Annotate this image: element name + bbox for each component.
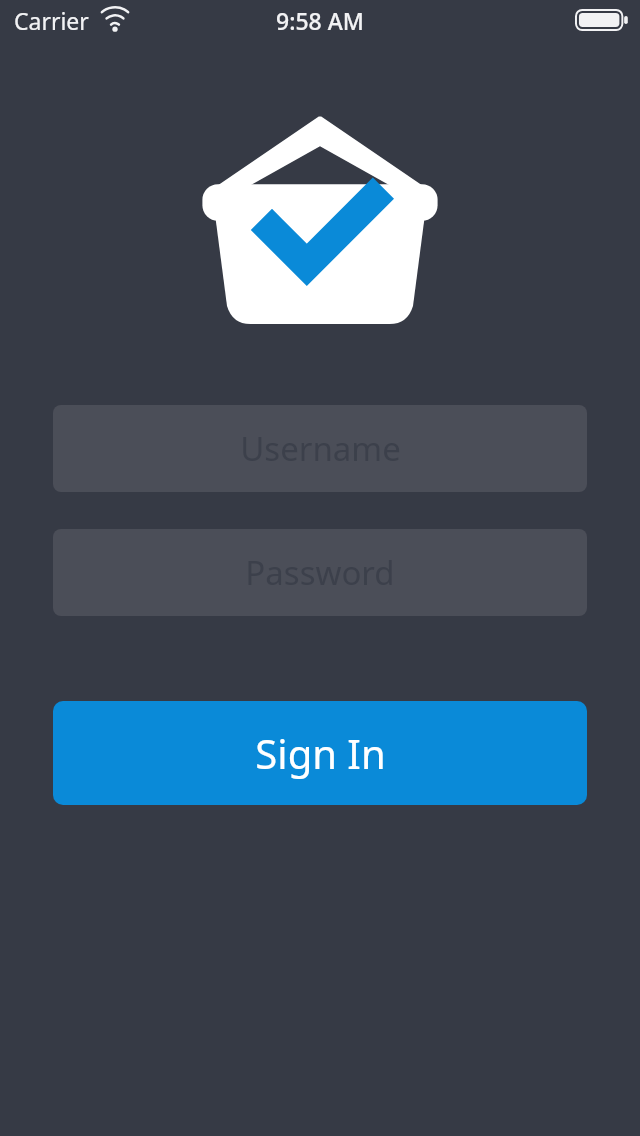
button[interactable]: Sign In [53,701,587,805]
staticText: 9:58 AM [276,5,364,36]
staticText: Carrier [14,5,89,36]
staticText: Password [245,550,395,595]
staticText: Username [240,426,401,471]
staticText: Sign In [255,726,386,780]
